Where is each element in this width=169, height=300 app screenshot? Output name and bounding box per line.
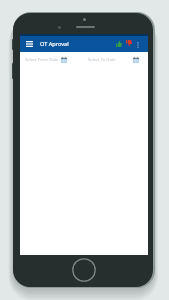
button[interactable]: Select To Date (86, 52, 143, 66)
button[interactable]: More options (133, 38, 142, 51)
button[interactable]: Select From Date (23, 52, 70, 66)
button[interactable]: Approve (113, 38, 124, 50)
staticText: Select From Date (25, 57, 59, 63)
staticText: Select To Date (88, 57, 116, 63)
staticText: OT Aproval (40, 40, 69, 48)
button[interactable]: Open navigation menu (22, 37, 36, 51)
button[interactable]: Reject (123, 37, 134, 49)
